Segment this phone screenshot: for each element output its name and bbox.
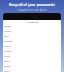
button[interactable]: GitHub <box>3 44 61 49</box>
staticText: LinkedIn <box>4 50 13 53</box>
button[interactable]: Zoom <box>3 69 61 72</box>
staticText: together in one place <box>18 8 47 12</box>
staticText: Amazon <box>4 30 12 33</box>
staticText: Netflix <box>4 55 11 58</box>
staticText: Zoom <box>4 70 10 72</box>
button[interactable]: Google <box>3 24 61 29</box>
staticText: Google <box>4 25 11 28</box>
staticText: Dropbox <box>4 40 13 43</box>
button[interactable]: Twitter <box>3 64 61 69</box>
button[interactable]: LinkedIn <box>3 49 61 54</box>
staticText: Spotify <box>4 60 11 63</box>
button[interactable]: Amazon <box>3 29 61 34</box>
button[interactable]: Spotify <box>3 59 61 64</box>
button[interactable]: Dropbox <box>3 39 61 44</box>
button[interactable]: Bank <box>3 34 61 39</box>
staticText: Twitter <box>4 65 11 68</box>
staticText: Keep all of your passwords <box>9 2 55 7</box>
staticText: Bank <box>4 35 9 38</box>
button[interactable]: Netflix <box>3 54 61 59</box>
staticText: GitHub <box>4 45 11 48</box>
staticText: Passwords <box>27 21 38 24</box>
